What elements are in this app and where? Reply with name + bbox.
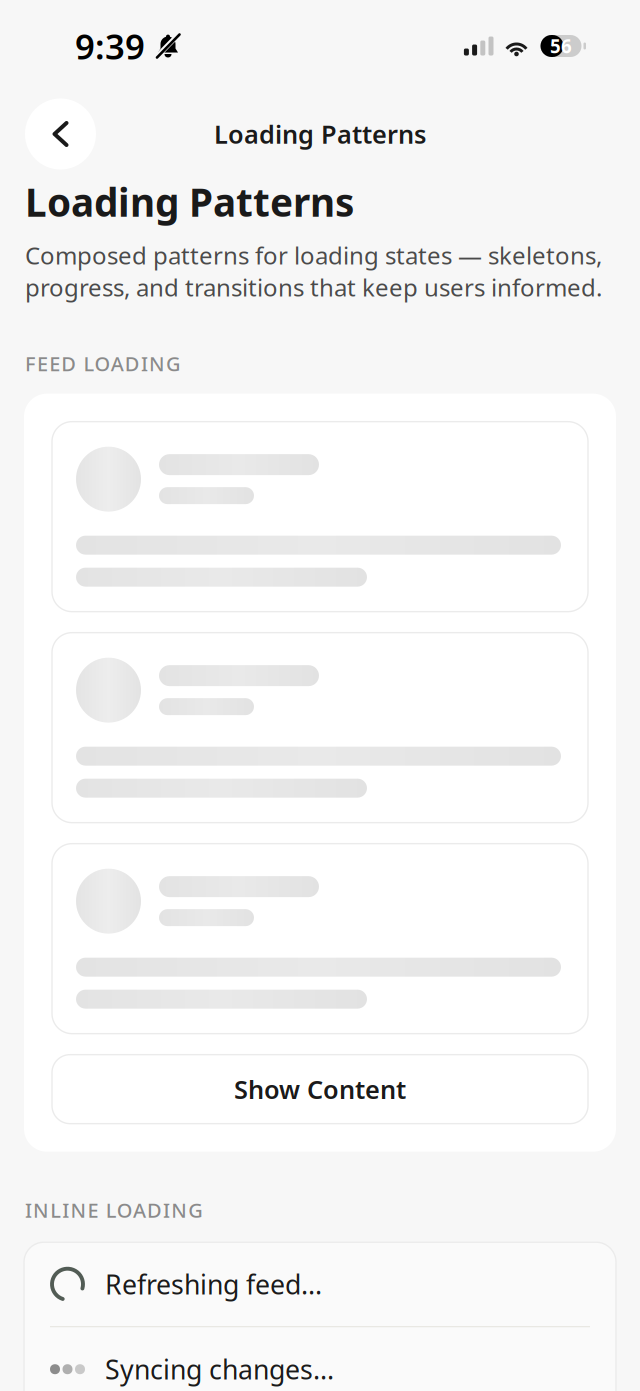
staticText: 56 xyxy=(550,34,572,58)
staticText: FEED LOADING xyxy=(25,350,181,377)
staticText: INLINE LOADING xyxy=(25,1197,203,1223)
staticText: Loading Patterns xyxy=(25,176,354,227)
staticText: Syncing changes... xyxy=(105,1351,334,1387)
button[interactable]: Show Content xyxy=(52,1055,588,1124)
staticText: Show Content xyxy=(234,1072,406,1106)
button[interactable]: Back xyxy=(25,98,96,169)
staticText: Composed patterns for loading states — s… xyxy=(25,239,602,303)
staticText: Refreshing feed... xyxy=(105,1266,322,1302)
staticText: Loading Patterns xyxy=(214,117,426,151)
staticText: 9:39 xyxy=(75,23,145,69)
